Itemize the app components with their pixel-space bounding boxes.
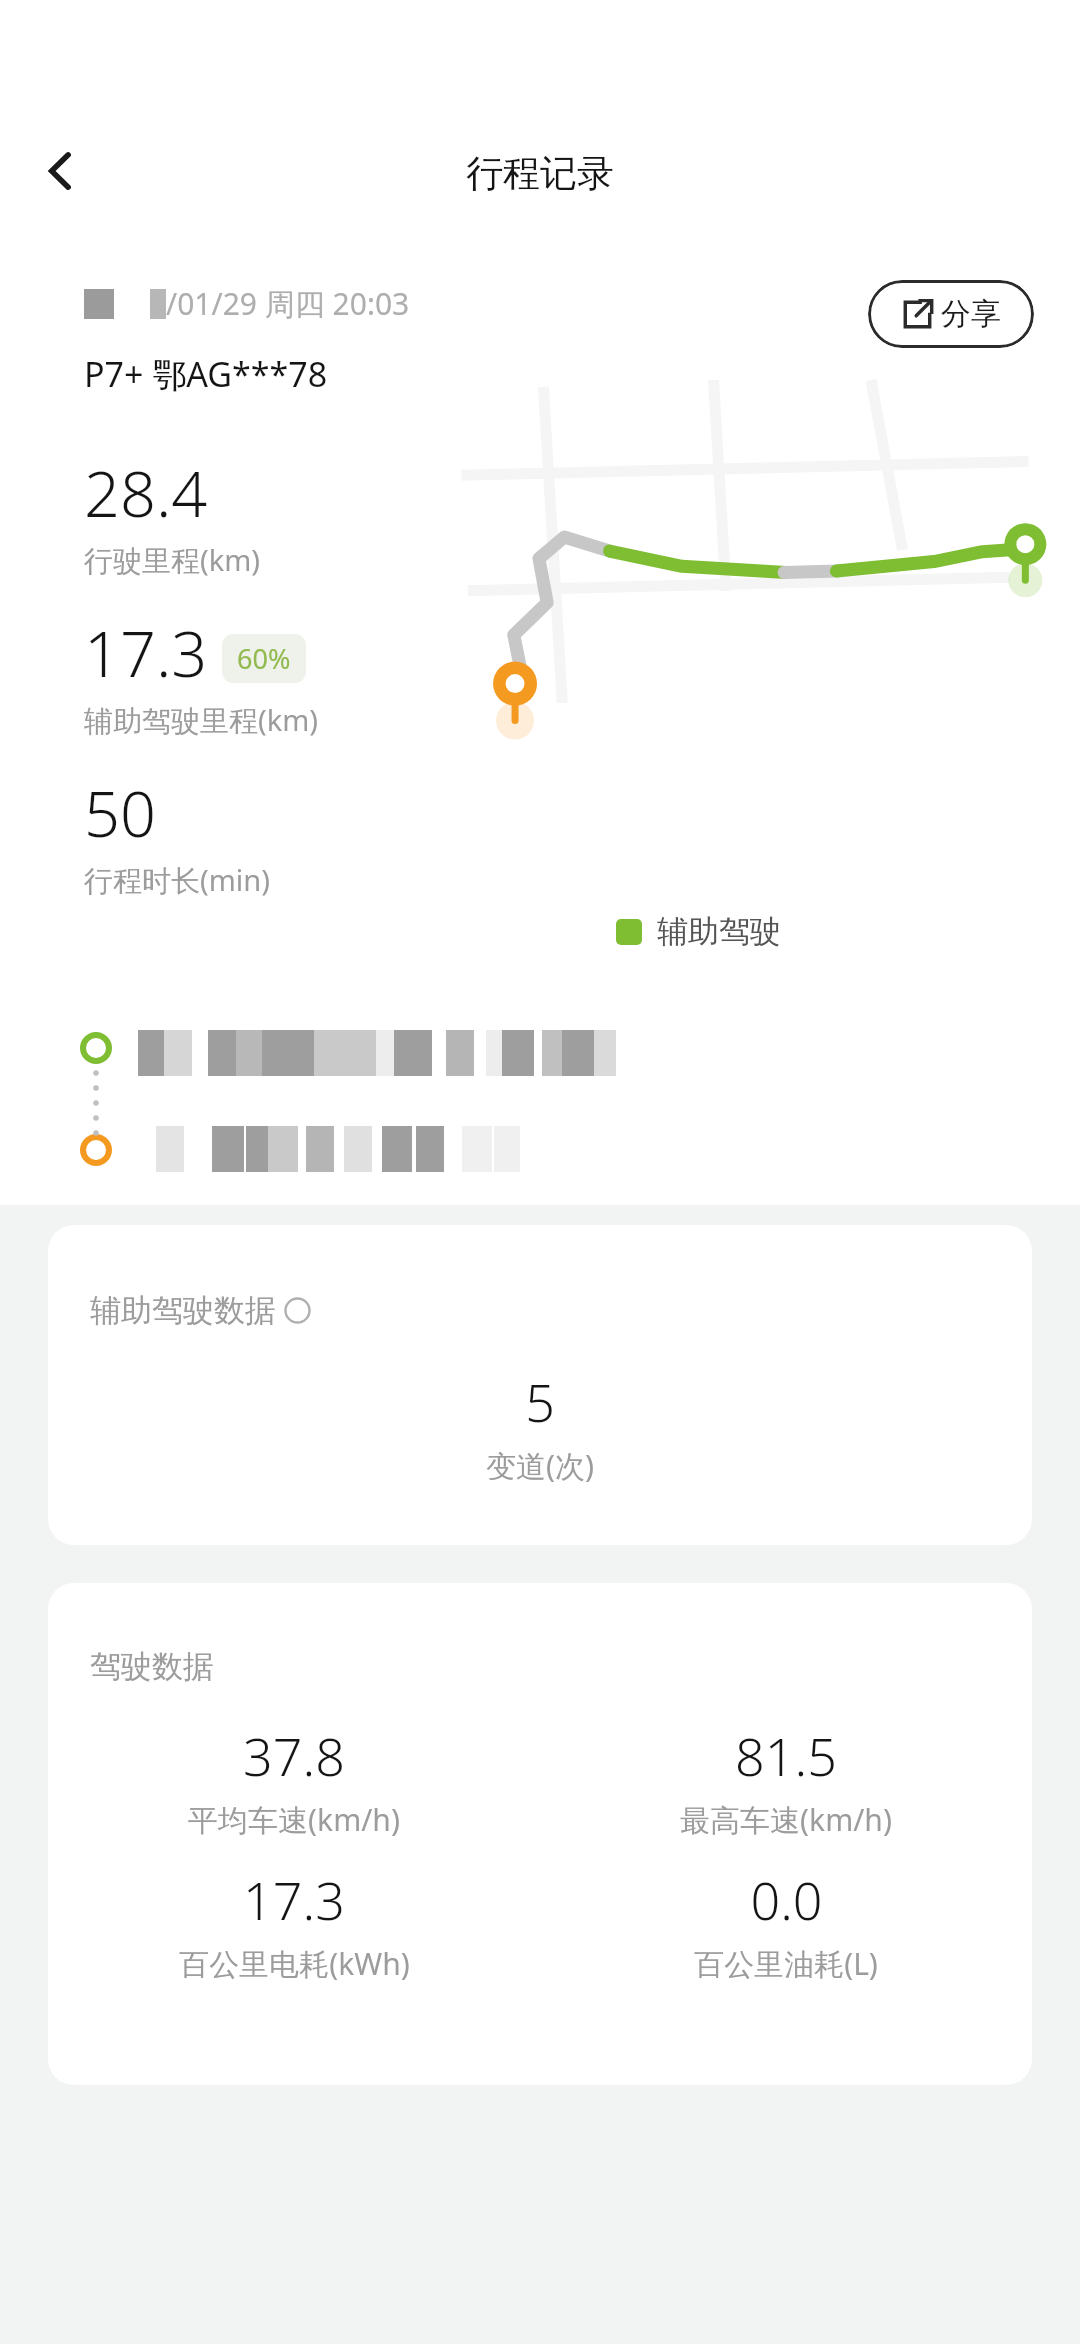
staticText: 28.4: [84, 450, 208, 536]
staticText: 行驶里程(km): [84, 540, 261, 580]
staticText: 变道(次): [486, 1445, 594, 1486]
staticText: 分享: [941, 295, 1001, 333]
staticText: 平均车速(km/h): [188, 1799, 400, 1840]
button[interactable]: 辅助驾驶数据: [48, 1225, 1032, 1545]
staticText: 17.3: [84, 610, 208, 696]
button[interactable]: 驾驶数据: [48, 1583, 1032, 2085]
staticText: 0.0: [750, 1864, 823, 1935]
staticText: 37.8: [243, 1720, 345, 1791]
staticText: 60%: [237, 640, 291, 677]
staticText: 百公里电耗(kWh): [179, 1943, 410, 1984]
staticText: /01/29 周四 20:03: [166, 283, 410, 324]
staticText: 行程记录: [0, 150, 1080, 197]
staticText: 17.3: [243, 1864, 345, 1935]
staticText: 驾驶数据: [90, 1647, 214, 1686]
staticText: P7+ 鄂AG***78: [84, 351, 328, 397]
button[interactable]: Back: [30, 140, 92, 202]
staticText: 辅助驾驶里程(km): [84, 700, 319, 740]
staticText: 50: [84, 770, 156, 856]
staticText: 百公里油耗(L): [694, 1943, 878, 1984]
staticText: 81.5: [735, 1720, 837, 1791]
staticText: 行程时长(min): [84, 860, 270, 900]
staticText: 5: [525, 1366, 555, 1437]
button[interactable]: 分享: [868, 280, 1034, 348]
staticText: 最高车速(km/h): [680, 1799, 892, 1840]
staticText: 辅助驾驶数据: [90, 1291, 276, 1330]
staticText: 辅助驾驶: [657, 912, 781, 951]
